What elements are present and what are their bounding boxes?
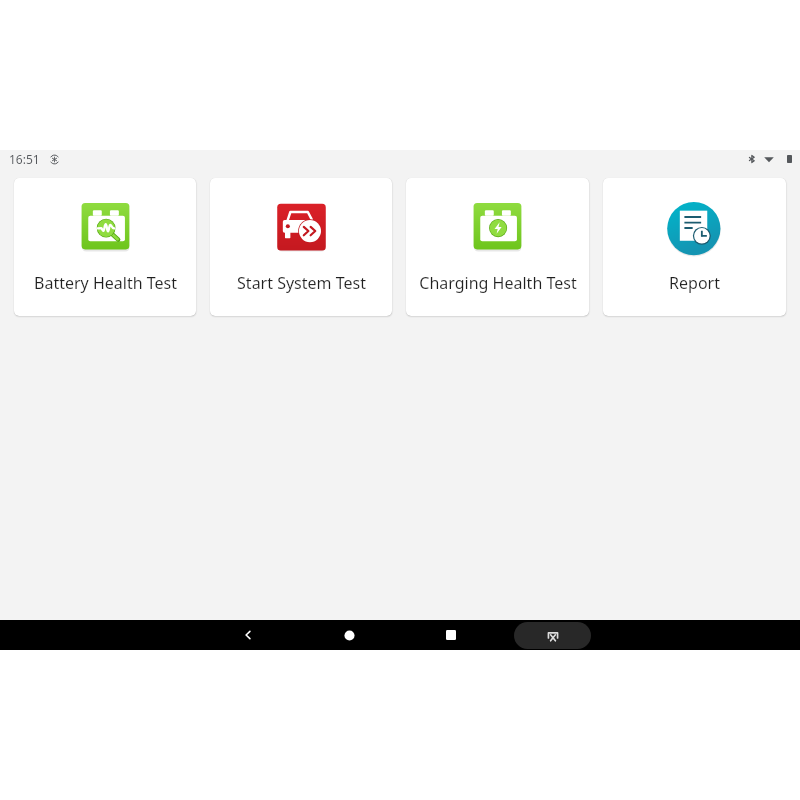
button[interactable]: Recent apps (436, 620, 466, 650)
button[interactable]: Report (603, 178, 786, 316)
button[interactable]: Start System Test (210, 178, 392, 316)
button[interactable]: Battery Health Test (14, 178, 196, 316)
staticText: Battery Health Test (34, 272, 177, 294)
staticText: Report (669, 272, 720, 294)
button[interactable]: Back (233, 620, 263, 650)
button[interactable]: Screenshot (514, 622, 591, 649)
button[interactable]: Charging Health Test (406, 178, 589, 316)
button[interactable]: Home (334, 620, 364, 650)
staticText: Start System Test (237, 272, 366, 294)
staticText: Charging Health Test (419, 272, 577, 294)
staticText: 16:51 (9, 151, 40, 167)
